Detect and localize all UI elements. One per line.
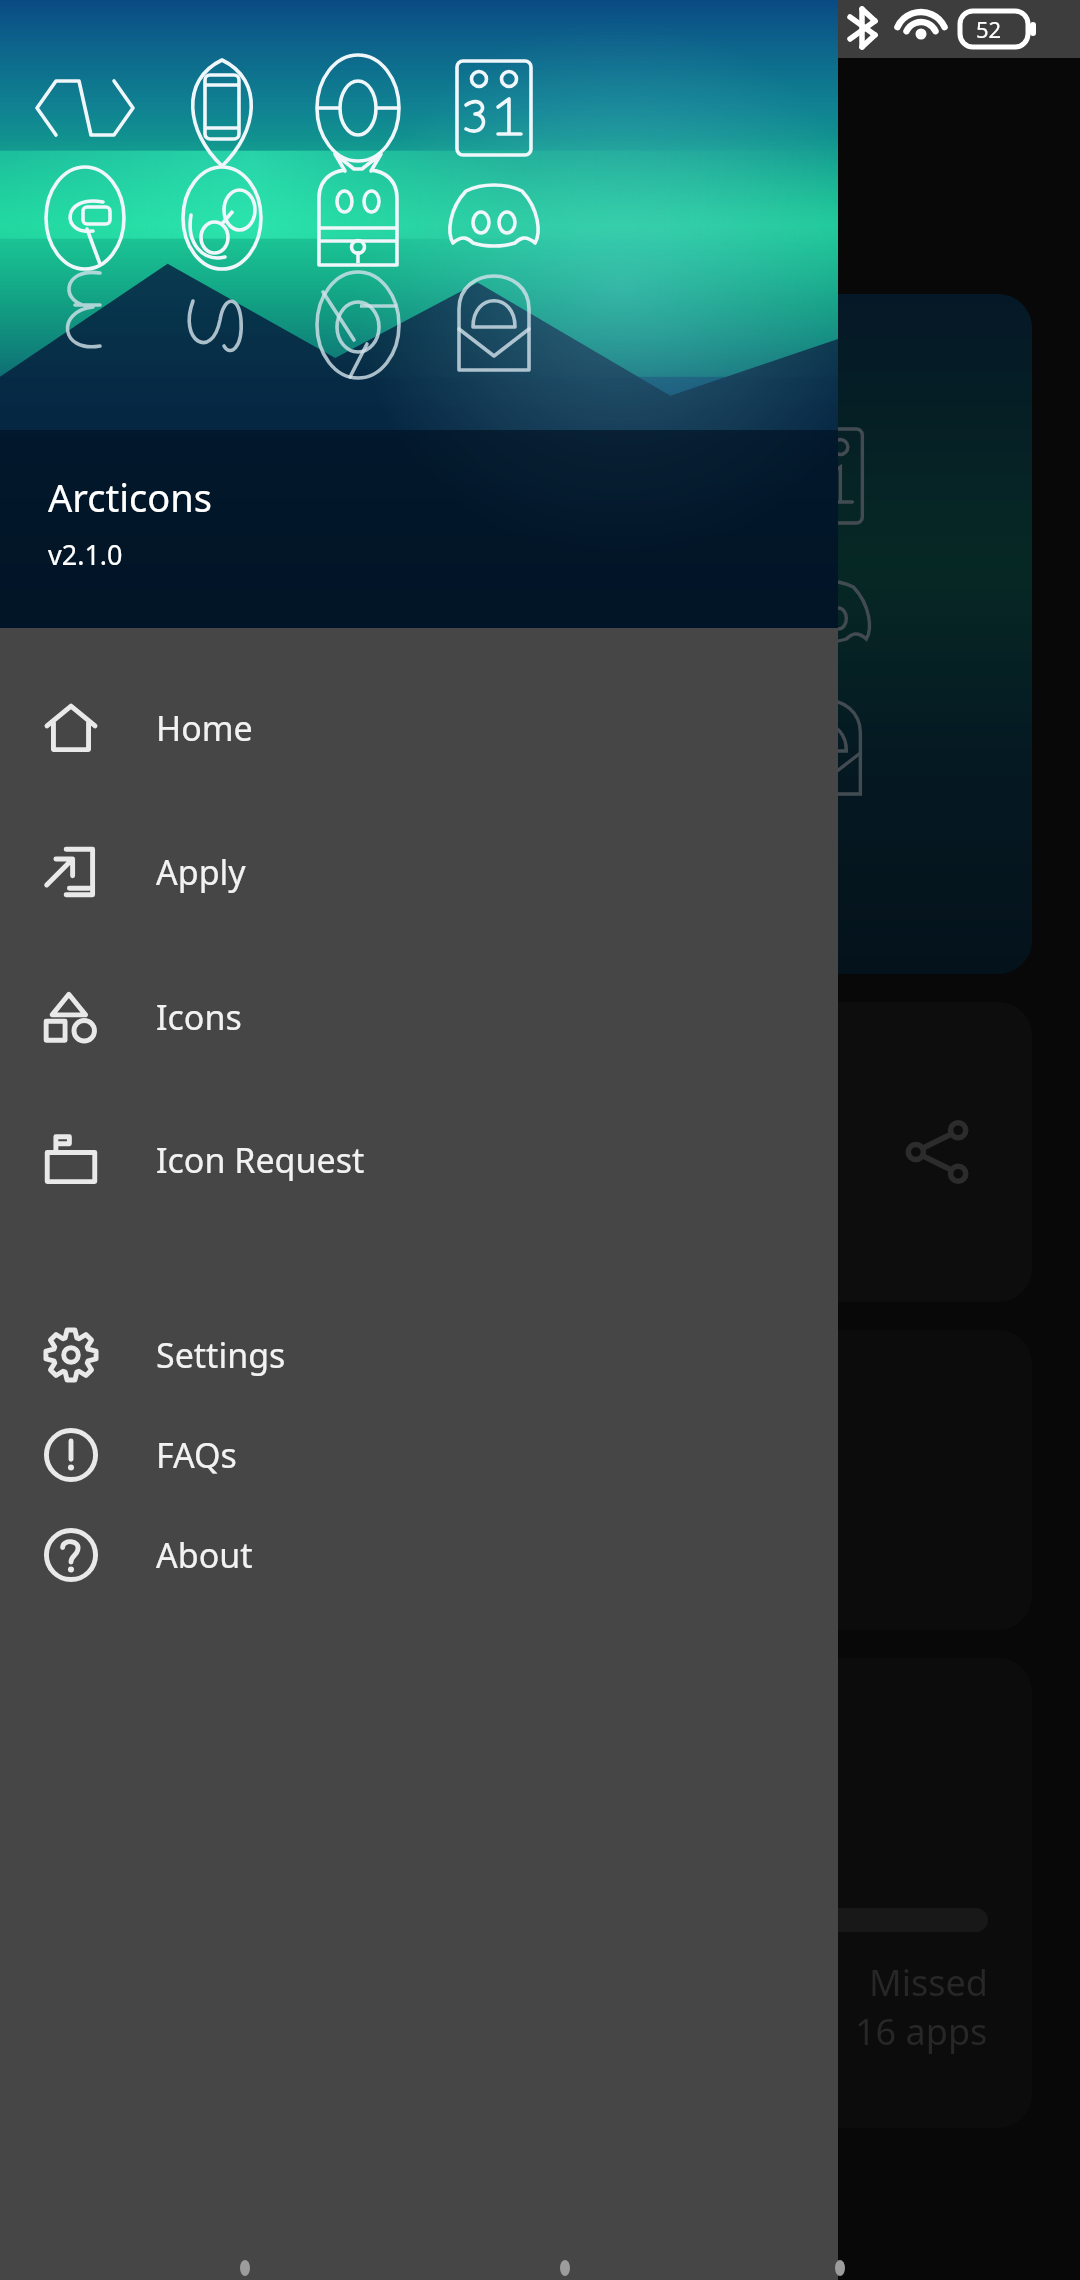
- button[interactable]: FAQs: [0, 1405, 838, 1505]
- staticText: 16 apps: [855, 2007, 988, 2056]
- button[interactable]: Apply: [0, 822, 838, 922]
- staticText: KB/s: [186, 29, 220, 51]
- staticText: FAQs: [156, 1432, 237, 1478]
- staticText: Missed: [869, 1958, 988, 2007]
- button[interactable]: Icon Request: [0, 1110, 838, 1210]
- staticText: About: [156, 1532, 253, 1578]
- other: Share: [904, 1119, 970, 1185]
- button[interactable]: Settings: [0, 1305, 838, 1405]
- button[interactable]: About: [0, 1505, 838, 1605]
- staticText: 0.00: [187, 7, 219, 29]
- staticText: 7305: [92, 1366, 321, 1502]
- staticText: Icon Request: [156, 1137, 365, 1183]
- staticText: Icons: [156, 994, 242, 1040]
- staticText: Apply: [156, 849, 246, 895]
- staticText: custom icons: [92, 1502, 327, 1554]
- staticText: Arcticons: [48, 471, 212, 523]
- button[interactable]: Home: [0, 678, 838, 778]
- staticText: Home: [156, 705, 253, 751]
- staticText: 9:07: [94, 7, 158, 51]
- button[interactable]: Icons: [0, 967, 838, 1067]
- staticText: Settings: [156, 1332, 286, 1378]
- staticText: v2.1.0: [48, 536, 123, 573]
- staticText: 52: [976, 14, 1002, 44]
